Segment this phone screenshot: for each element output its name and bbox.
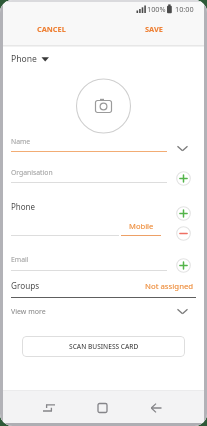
- staticText: Email: [11, 255, 29, 264]
- button[interactable]: [8, 165, 207, 187]
- button[interactable]: [121, 218, 161, 238]
- button[interactable]: [83, 394, 123, 422]
- button[interactable]: [8, 218, 118, 238]
- button[interactable]: [8, 252, 207, 274]
- button[interactable]: [76, 79, 130, 133]
- button[interactable]: [8, 134, 207, 156]
- staticText: Organisation: [11, 168, 53, 177]
- staticText: Mobile: [129, 221, 154, 231]
- button[interactable]: [8, 50, 56, 66]
- button[interactable]: CANCEL: [30, 21, 72, 37]
- button[interactable]: SAVE: [136, 21, 172, 37]
- staticText: CANCEL: [37, 24, 66, 34]
- staticText: Not assigned: [145, 281, 194, 292]
- staticText: 10:00: [175, 4, 194, 14]
- staticText: SAVE: [145, 24, 163, 34]
- button[interactable]: [8, 278, 207, 300]
- staticText: View more: [11, 307, 46, 317]
- button[interactable]: [30, 394, 70, 422]
- staticText: 100%: [147, 4, 166, 14]
- staticText: Groups: [11, 280, 40, 291]
- button[interactable]: SCAN BUSINESS CARD: [22, 336, 185, 357]
- staticText: Name: [11, 137, 31, 146]
- button[interactable]: [137, 394, 177, 422]
- staticText: Phone: [11, 201, 36, 212]
- button[interactable]: [8, 303, 207, 321]
- staticText: SCAN BUSINESS CARD: [69, 342, 139, 351]
- staticText: Phone: [11, 53, 37, 65]
